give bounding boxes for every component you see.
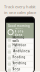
button[interactable]: Morning walk	[6, 37, 34, 43]
staticText: Track every habit	[4, 4, 36, 9]
staticText: Good morning	[8, 24, 30, 28]
staticText: 5 of 8 glasses	[12, 47, 21, 49]
button[interactable]: Stretching	[6, 61, 34, 67]
staticText: Sleep	[12, 67, 20, 71]
staticText: Morning walk	[12, 36, 24, 43]
staticText: 22 pages	[12, 59, 19, 61]
staticText: 7h 20m	[12, 71, 17, 72]
staticText: Hydration	[12, 43, 26, 47]
button[interactable]: Mindfulness	[6, 49, 34, 55]
staticText: Stretching	[12, 61, 26, 65]
staticText: 6,240 steps	[12, 43, 20, 45]
staticText: 4 of 6 done	[15, 30, 24, 37]
staticText: 10 min	[12, 53, 16, 55]
staticText: Reading	[12, 55, 25, 59]
button[interactable]: Reading	[6, 55, 34, 61]
staticText: Not yet	[12, 65, 16, 67]
button[interactable]: Hydration	[6, 43, 34, 49]
staticText: Mindfulness	[12, 49, 29, 53]
staticText: in one calm place	[4, 10, 36, 15]
staticText: Daily score	[15, 28, 23, 29]
button[interactable]: Sleep	[6, 67, 34, 72]
